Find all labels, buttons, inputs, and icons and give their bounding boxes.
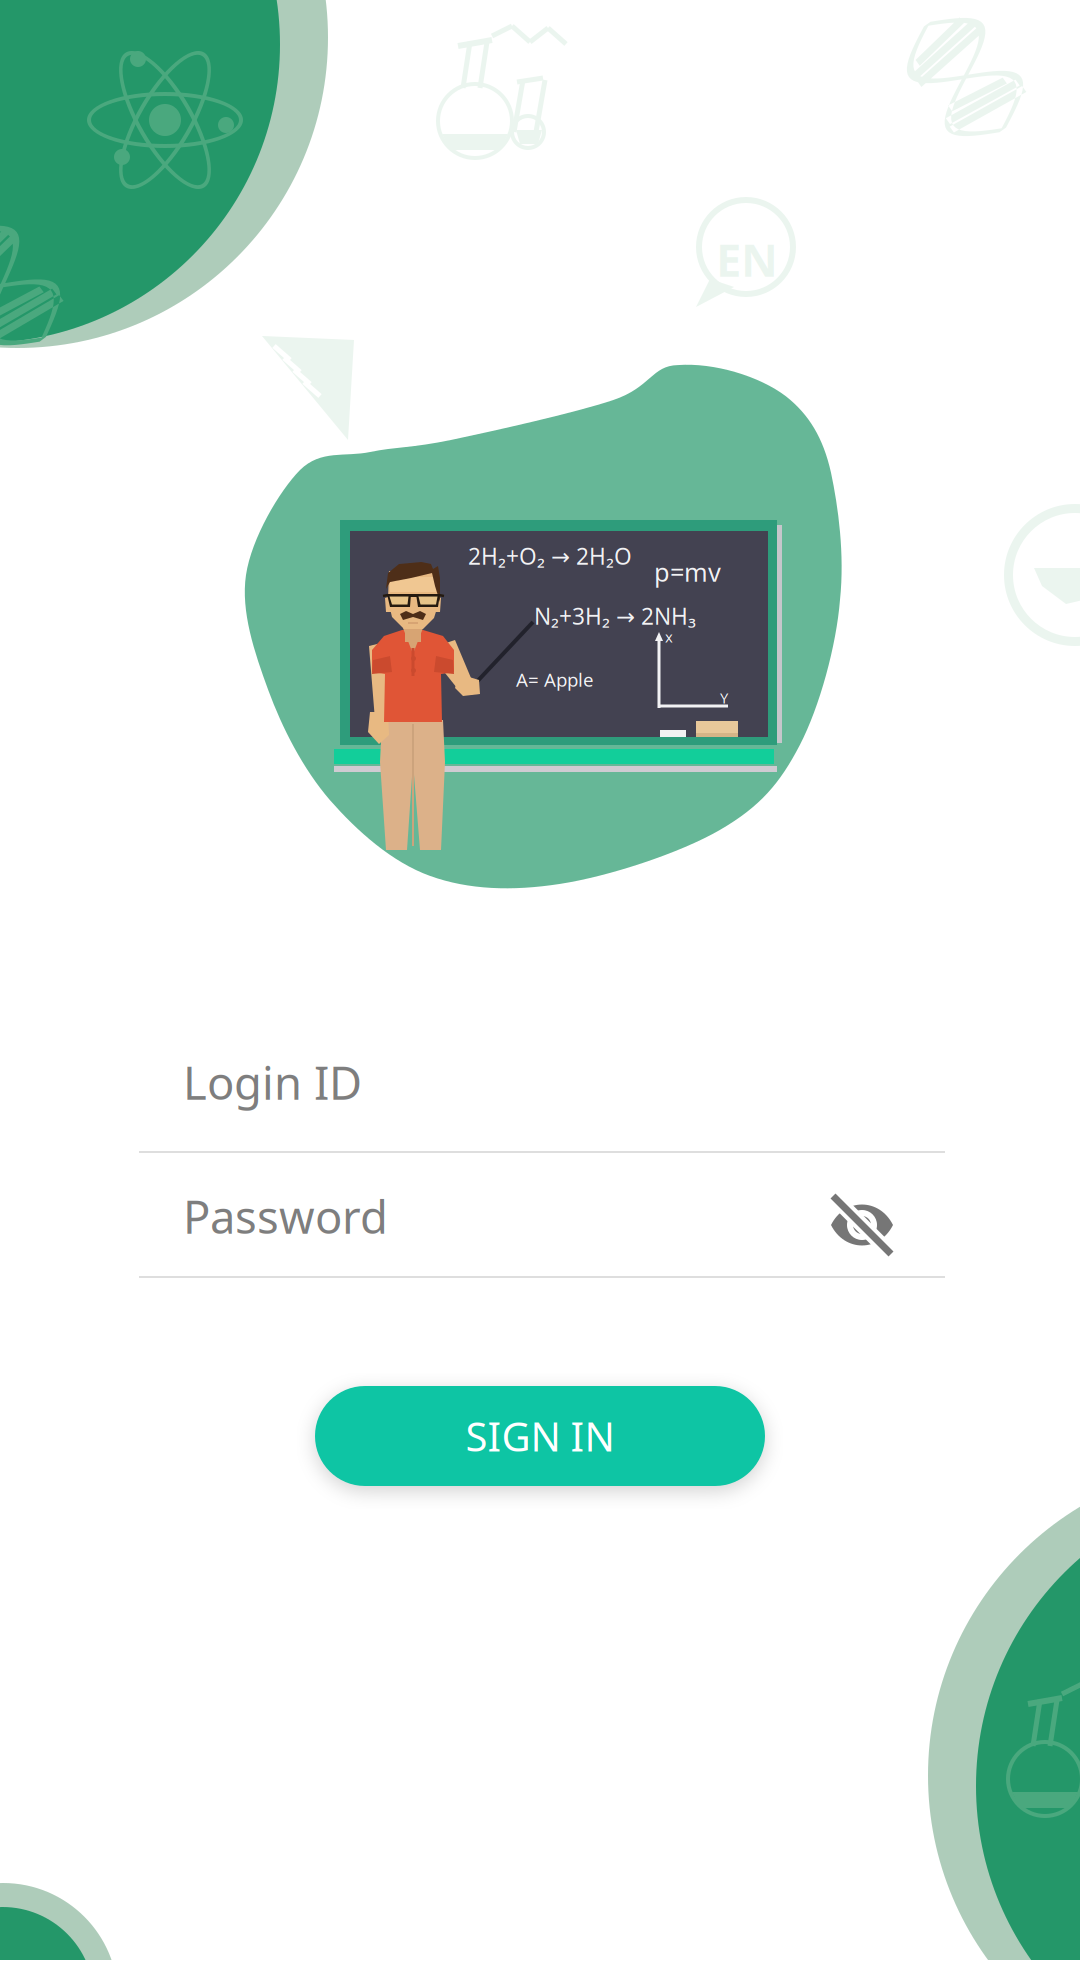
staticText: A= Apple (516, 667, 594, 692)
staticText: SIGN IN (465, 1409, 614, 1462)
staticText: N₂+3H₂ → 2NH₃ (534, 601, 696, 631)
staticText: Login ID (183, 1052, 362, 1112)
staticText: Password (183, 1186, 388, 1246)
button[interactable]: Show password (829, 1192, 895, 1258)
staticText: p=mv (654, 555, 721, 589)
button[interactable]: SIGN IN (315, 1386, 765, 1486)
staticText: Y (720, 688, 728, 707)
staticText: 2H₂+O₂ → 2H₂O (468, 541, 632, 571)
staticText: x (665, 627, 673, 646)
staticText: EN (716, 229, 778, 289)
